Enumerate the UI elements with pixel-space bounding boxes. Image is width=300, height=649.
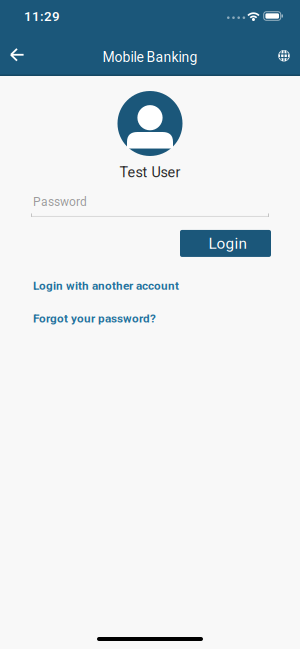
button[interactable]: Login <box>180 230 271 257</box>
staticText: Login with another account <box>33 279 179 293</box>
staticText: Forgot your password? <box>33 312 156 325</box>
button[interactable]: Forgot your password? <box>33 312 156 325</box>
staticText: Mobile Banking <box>102 49 197 65</box>
button[interactable]: Login with another account <box>33 279 179 293</box>
button[interactable]: Back <box>0 46 24 60</box>
staticText: 11:29 <box>24 9 60 24</box>
staticText: Password <box>33 195 87 209</box>
button[interactable]: Change language <box>278 47 300 59</box>
staticText: Login <box>208 234 246 252</box>
staticText: Test User <box>119 164 180 181</box>
